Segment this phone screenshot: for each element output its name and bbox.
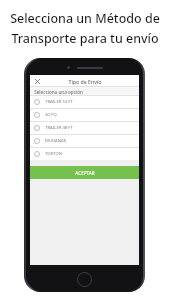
staticText: TRAILER 53 FT	[45, 99, 73, 105]
button[interactable]: 40 PQ	[30, 109, 139, 121]
button[interactable]: Cerrar	[32, 76, 42, 86]
staticText: 40 PQ	[45, 112, 57, 118]
button[interactable]: TRAILER 48 FT	[30, 122, 139, 134]
staticText: TRAILER 48 FT	[45, 125, 73, 131]
staticText: Tipo de Envío	[68, 78, 102, 85]
button[interactable]: ACEPTAR	[30, 166, 139, 179]
staticText: Selecciona una opción	[34, 89, 83, 95]
other: Inicio	[77, 272, 92, 287]
staticText: TORTON	[45, 151, 62, 157]
button[interactable]: TRAILER 53 FT	[30, 96, 139, 108]
staticText: Selecciona un Método de	[10, 10, 160, 27]
staticText: Transporte para tu envío	[11, 30, 159, 47]
button[interactable]: MUDANZA	[30, 135, 139, 147]
staticText: ACEPTAR	[75, 170, 95, 176]
staticText: MUDANZA	[45, 138, 66, 144]
button[interactable]: TORTON	[30, 148, 139, 160]
